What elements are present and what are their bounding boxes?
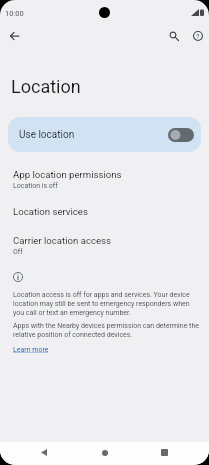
- staticText: 10:00: [5, 9, 24, 18]
- staticText: Location: [11, 76, 81, 97]
- button[interactable]: Back: [26, 441, 62, 464]
- staticText: Use location: [19, 129, 75, 141]
- staticText: Carrier location access: [13, 235, 111, 246]
- staticText: Apps with the Nearby devices permission …: [13, 322, 201, 339]
- button[interactable]: Use location: [8, 117, 201, 152]
- button[interactable]: Home: [87, 441, 123, 464]
- button[interactable]: Location services: [0, 198, 209, 224]
- staticText: Off: [13, 248, 23, 256]
- button[interactable]: Navigate up: [3, 25, 25, 47]
- button[interactable]: App location permissions: [0, 161, 209, 190]
- staticText: ?: [196, 32, 200, 40]
- button[interactable]: Recent apps: [146, 441, 182, 464]
- button[interactable]: Help: [187, 25, 209, 47]
- staticText: Location services: [13, 206, 88, 217]
- staticText: Learn more: [13, 346, 49, 354]
- staticText: App location permissions: [13, 169, 122, 180]
- staticText: Location access is off for apps and serv…: [13, 291, 201, 317]
- staticText: Location is off: [13, 182, 58, 190]
- button[interactable]: Search: [163, 25, 185, 47]
- button[interactable]: Carrier location access: [0, 227, 209, 256]
- button[interactable]: Learn more: [13, 346, 49, 354]
